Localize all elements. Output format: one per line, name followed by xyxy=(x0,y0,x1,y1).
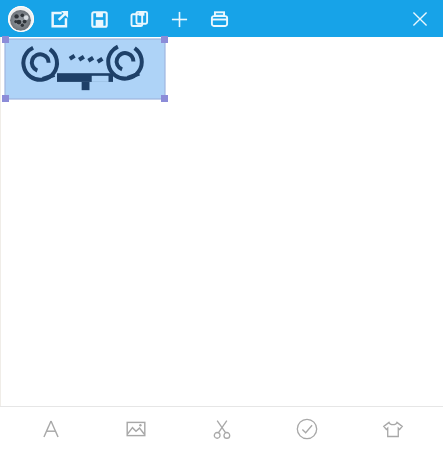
button[interactable]: Close xyxy=(405,4,435,34)
button[interactable]: Cut xyxy=(187,407,257,450)
button[interactable]: Add xyxy=(164,4,194,34)
button[interactable]: Image xyxy=(101,407,171,450)
button[interactable]: Save xyxy=(84,4,114,34)
button[interactable]: Done xyxy=(272,407,342,450)
button[interactable]: Apparel xyxy=(358,407,428,450)
button[interactable]: Text xyxy=(16,407,86,450)
button[interactable]: Selected sticker xyxy=(5,39,165,99)
button[interactable]: Share xyxy=(44,4,74,34)
button[interactable]: Print xyxy=(204,4,234,34)
button[interactable]: Duplicate xyxy=(124,4,154,34)
button[interactable]: Profile xyxy=(8,6,34,32)
